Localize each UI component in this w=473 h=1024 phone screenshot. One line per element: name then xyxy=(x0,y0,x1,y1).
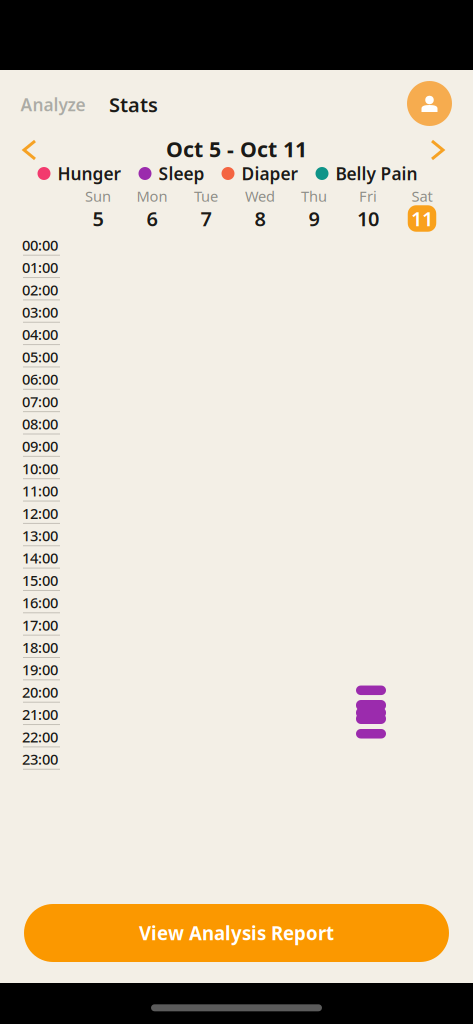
staticText: Oct 5 - Oct 11 xyxy=(166,135,307,163)
staticText: Mon xyxy=(136,186,167,206)
staticText: 01:00 xyxy=(22,258,58,277)
staticText: Sleep xyxy=(158,162,204,185)
staticText: Hunger xyxy=(57,162,121,185)
staticText: 6 xyxy=(146,205,157,232)
staticText: 10 xyxy=(357,205,379,232)
staticText: 8 xyxy=(254,205,265,232)
staticText: Sat xyxy=(411,186,432,206)
staticText: 08:00 xyxy=(22,414,58,434)
staticText: View Analysis Report xyxy=(139,921,334,945)
staticText: 02:00 xyxy=(22,280,58,299)
staticText: 5 xyxy=(92,205,103,232)
staticText: 09:00 xyxy=(22,436,58,456)
button[interactable]: 11 xyxy=(407,205,437,232)
staticText: Thu xyxy=(301,186,327,206)
button[interactable]: Next week xyxy=(425,137,449,163)
staticText: 03:00 xyxy=(22,302,58,322)
button[interactable]: Stats xyxy=(109,91,158,118)
button[interactable]: View Analysis Report xyxy=(24,904,449,962)
staticText: 13:00 xyxy=(22,526,58,545)
staticText: 18:00 xyxy=(22,638,58,657)
staticText: Stats xyxy=(109,91,158,118)
button[interactable]: Analyze xyxy=(20,93,85,116)
staticText: 04:00 xyxy=(22,325,58,344)
staticText: Fri xyxy=(359,186,377,206)
button[interactable]: 10 xyxy=(353,205,383,232)
staticText: Sun xyxy=(85,186,111,206)
staticText: 00:00 xyxy=(22,235,58,255)
button[interactable]: 9 xyxy=(299,205,329,232)
staticText: 19:00 xyxy=(22,660,58,679)
staticText: 11 xyxy=(411,205,433,232)
staticText: 12:00 xyxy=(22,503,58,523)
staticText: 06:00 xyxy=(22,369,58,389)
button[interactable]: 6 xyxy=(137,205,167,232)
button[interactable]: 5 xyxy=(83,205,113,232)
staticText: 07:00 xyxy=(22,392,58,411)
staticText: Belly Pain xyxy=(335,162,417,185)
staticText: 22:00 xyxy=(22,727,58,746)
staticText: Analyze xyxy=(20,93,85,116)
button[interactable]: 8 xyxy=(245,205,275,232)
button[interactable]: Previous week xyxy=(17,137,41,163)
staticText: 23:00 xyxy=(22,749,58,769)
staticText: 14:00 xyxy=(22,548,58,568)
staticText: 9 xyxy=(308,205,319,232)
staticText: Wed xyxy=(245,186,275,206)
staticText: 10:00 xyxy=(22,459,58,478)
staticText: 11:00 xyxy=(22,481,58,501)
staticText: 16:00 xyxy=(22,593,58,612)
staticText: 20:00 xyxy=(22,682,58,702)
staticText: 05:00 xyxy=(22,347,58,366)
button[interactable]: 7 xyxy=(191,205,221,232)
button[interactable]: Profile xyxy=(407,81,452,126)
staticText: 7 xyxy=(200,205,211,232)
staticText: 21:00 xyxy=(22,705,58,724)
staticText: Diaper xyxy=(241,162,298,185)
staticText: Tue xyxy=(194,186,218,206)
staticText: 17:00 xyxy=(22,615,58,635)
staticText: 15:00 xyxy=(22,570,58,590)
